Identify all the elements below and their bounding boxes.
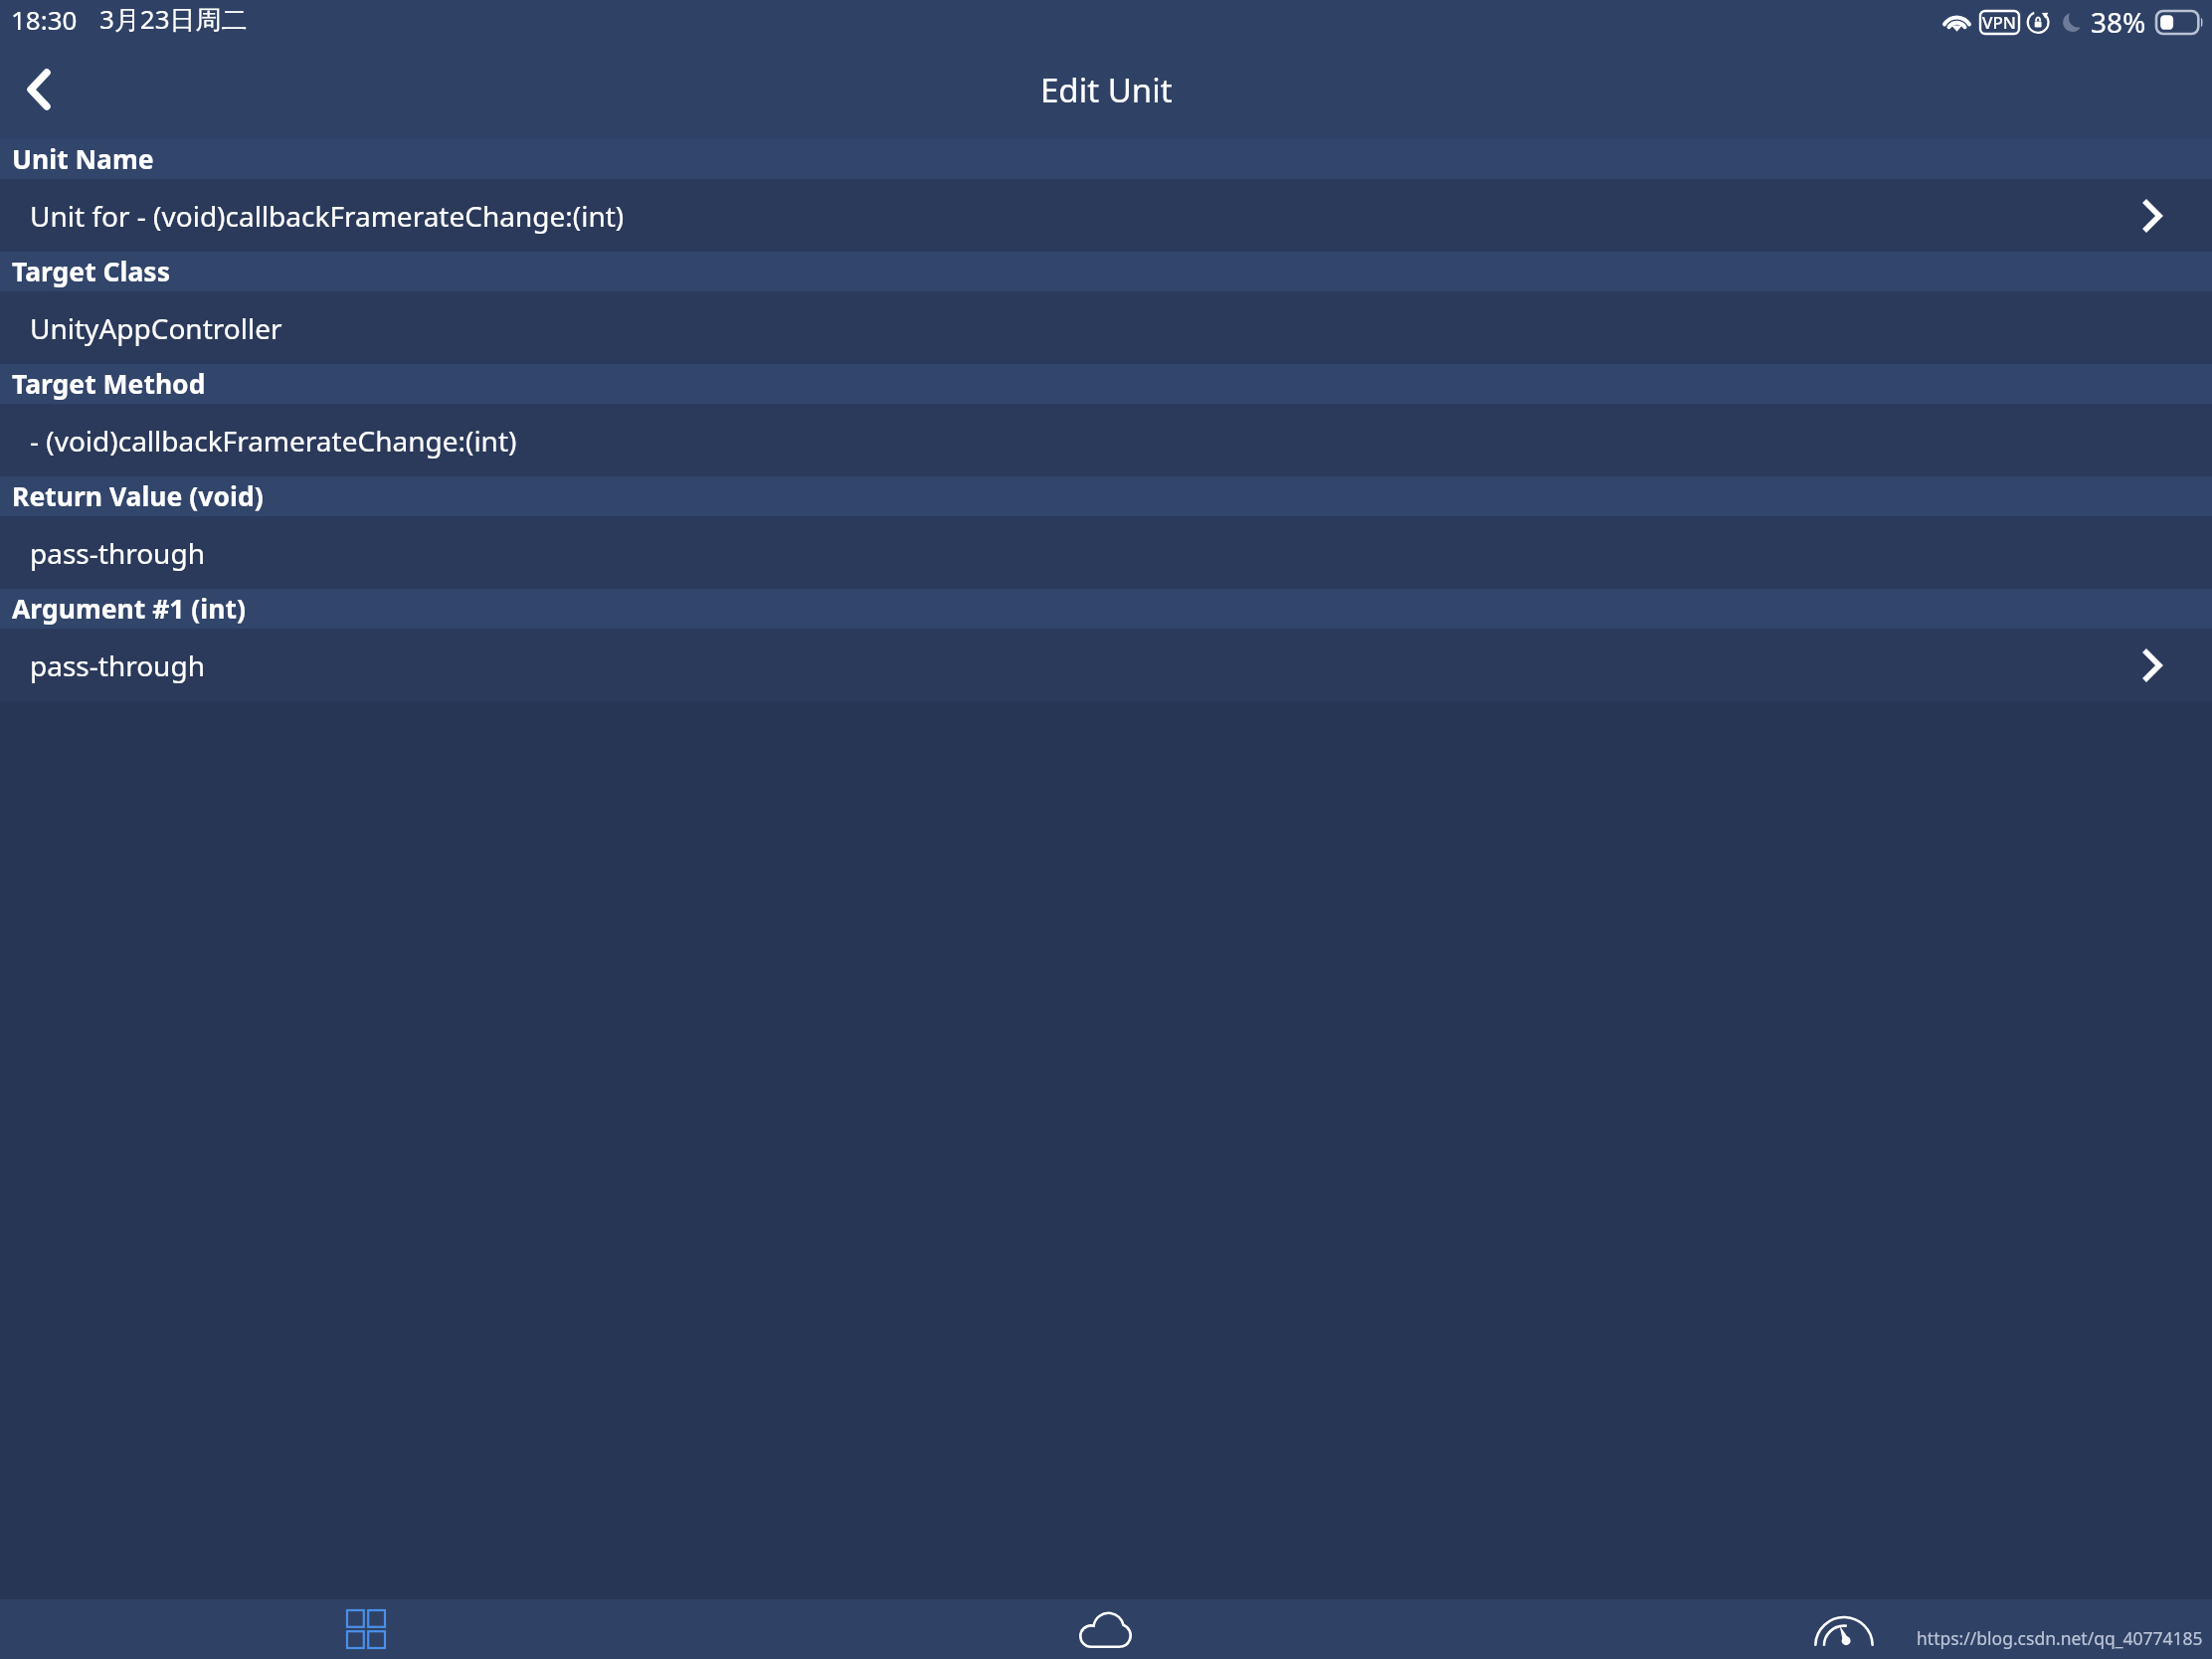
staticText: - (void)callbackFramerateChange:(int) [30, 422, 517, 460]
staticText: pass-through [30, 646, 205, 684]
staticText: 18:30 [11, 2, 78, 37]
staticText: Argument #1 (int) [12, 591, 246, 627]
button[interactable]: Cloud [1076, 1599, 1136, 1659]
button[interactable]: Apps [338, 1601, 394, 1657]
button[interactable]: pass-through [0, 629, 2212, 701]
staticText: VPN [1982, 11, 2017, 34]
staticText: 38% [2091, 3, 2146, 41]
staticText: UnityAppController [30, 309, 282, 347]
staticText: Edit Unit [1040, 68, 1173, 112]
button[interactable]: UnityAppController [0, 291, 2212, 364]
staticText: Return Value (void) [12, 478, 264, 514]
button[interactable]: Performance [1814, 1599, 1874, 1659]
staticText: 3月23日周二 [99, 1, 248, 37]
staticText: Unit Name [12, 141, 154, 177]
staticText: https://blog.csdn.net/qq_40774185 [1917, 1626, 2203, 1650]
staticText: Target Method [12, 366, 206, 402]
button[interactable]: Back [8, 59, 70, 120]
staticText: Target Class [12, 254, 170, 289]
staticText: pass-through [30, 534, 205, 572]
button[interactable]: pass-through [0, 516, 2212, 589]
staticText: Unit for - (void)callbackFramerateChange… [30, 197, 625, 235]
button[interactable]: - (void)callbackFramerateChange:(int) [0, 404, 2212, 476]
button[interactable]: Unit for - (void)callbackFramerateChange… [0, 179, 2212, 252]
